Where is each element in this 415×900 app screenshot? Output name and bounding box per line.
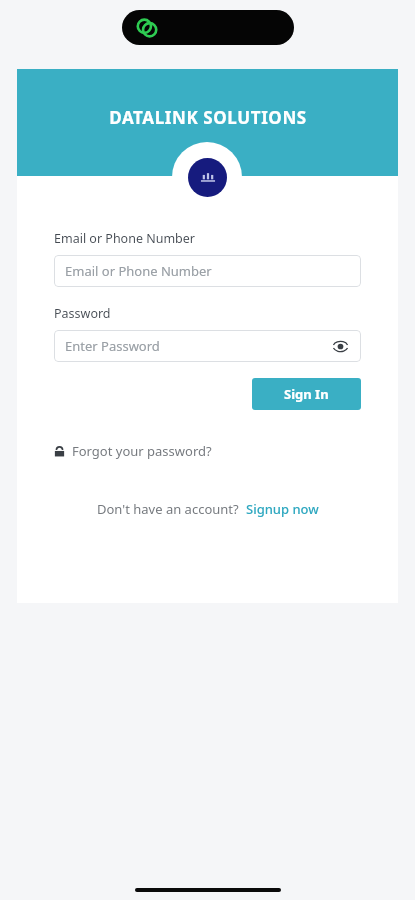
staticText: Forgot your password? [72,442,212,460]
button[interactable]: Enter Password [54,330,361,362]
staticText: Signup now [246,500,319,518]
staticText: Password [54,305,111,322]
staticText: DATALINK SOLUTIONS [109,106,307,129]
button[interactable]: Sign In [252,378,361,410]
staticText: Enter Password [65,337,160,355]
staticText: Email or Phone Number [65,262,212,280]
staticText: Sign In [284,385,329,403]
staticText: Don't have an account? [97,500,239,518]
button[interactable]: Forgot your password? [54,440,212,462]
button[interactable]: Show password [330,336,350,356]
staticText: Email or Phone Number [54,230,196,247]
button[interactable]: Email or Phone Number [54,255,361,287]
other: DataLink logo [136,17,158,39]
button[interactable]: Signup now [246,500,319,518]
